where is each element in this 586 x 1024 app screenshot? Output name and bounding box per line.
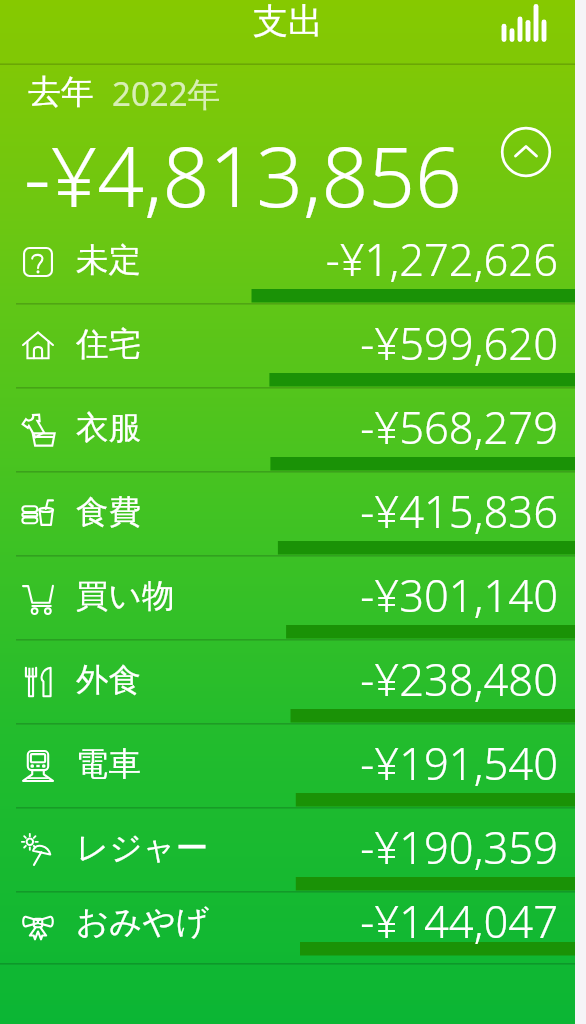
staticText: 去年 [28, 71, 94, 113]
staticText: -¥190,359 [213, 817, 558, 876]
staticText: -¥1,272,626 [145, 229, 558, 288]
staticText: -¥415,836 [145, 481, 558, 540]
staticText: 住宅 [76, 324, 141, 365]
staticText: 支出 [253, 0, 323, 43]
staticText: 買い物 [76, 576, 175, 617]
staticText: 2022年 [112, 71, 221, 116]
staticText: 衣服 [76, 408, 141, 449]
staticText: おみやげ [76, 902, 210, 943]
button[interactable]: レジャー [0, 807, 575, 891]
staticText: -¥4,813,856 [24, 119, 462, 231]
staticText: 外食 [76, 660, 141, 701]
button[interactable]: 電車 [0, 723, 575, 807]
staticText: -¥144,047 [214, 891, 558, 950]
staticText: レジャー [76, 828, 209, 869]
button[interactable]: 食費 [0, 471, 575, 555]
button[interactable]: 衣服 [0, 387, 575, 471]
button[interactable]: 未定 [0, 227, 575, 303]
staticText: -¥599,620 [145, 313, 558, 372]
button[interactable]: 買い物 [0, 555, 575, 639]
staticText: -¥191,540 [145, 733, 558, 792]
staticText: 電車 [76, 744, 141, 785]
button[interactable]: おみやげ [0, 891, 575, 956]
staticText: -¥238,480 [145, 649, 558, 708]
staticText: 未定 [76, 240, 141, 281]
staticText: -¥301,140 [179, 565, 558, 624]
button[interactable]: 住宅 [0, 303, 575, 387]
button[interactable]: Collapse [499, 125, 553, 179]
staticText: 食費 [76, 492, 141, 533]
staticText: -¥568,279 [145, 397, 558, 456]
button[interactable]: Statistics chart [490, 0, 550, 50]
button[interactable]: 外食 [0, 639, 575, 723]
